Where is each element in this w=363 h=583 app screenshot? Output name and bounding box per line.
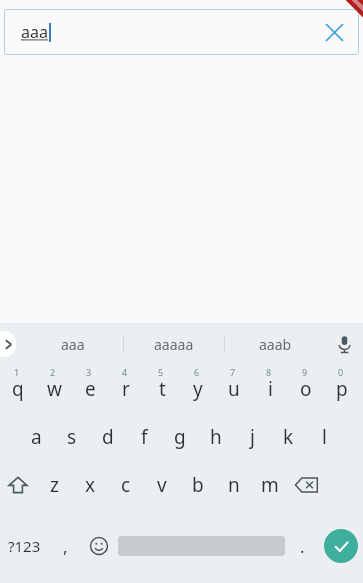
- staticText: d: [102, 424, 114, 450]
- button[interactable]: a: [18, 413, 54, 461]
- button[interactable]: q: [0, 365, 36, 413]
- staticText: y: [193, 376, 203, 402]
- staticText: e: [85, 376, 96, 402]
- staticText: w: [47, 376, 62, 402]
- staticText: aaaaa: [154, 335, 194, 354]
- button[interactable]: x: [72, 461, 108, 509]
- staticText: 1: [14, 366, 20, 378]
- staticText: c: [121, 472, 131, 498]
- button[interactable]: g: [162, 413, 198, 461]
- button[interactable]: Voice input: [325, 323, 363, 365]
- staticText: 5: [158, 366, 164, 378]
- staticText: 8: [266, 366, 272, 378]
- button[interactable]: n: [216, 461, 252, 509]
- staticText: aaa: [61, 335, 85, 354]
- button[interactable]: y: [180, 365, 216, 413]
- button[interactable]: Clear text: [317, 15, 351, 49]
- staticText: k: [283, 424, 294, 450]
- staticText: u: [228, 376, 240, 402]
- staticText: ?123: [8, 536, 41, 556]
- button[interactable]: ?123: [0, 509, 49, 583]
- staticText: a: [31, 424, 42, 450]
- button[interactable]: b: [180, 461, 216, 509]
- button[interactable]: v: [144, 461, 180, 509]
- button[interactable]: aaaaa: [124, 323, 224, 365]
- staticText: q: [12, 376, 24, 402]
- staticText: g: [174, 424, 186, 450]
- staticText: x: [85, 472, 96, 498]
- staticText: z: [50, 472, 59, 498]
- staticText: 2: [50, 366, 56, 378]
- staticText: 6: [194, 366, 200, 378]
- button[interactable]: s: [54, 413, 90, 461]
- staticText: .: [300, 535, 305, 558]
- staticText: n: [228, 472, 240, 498]
- button[interactable]: l: [306, 413, 342, 461]
- button[interactable]: Done: [318, 509, 363, 583]
- button[interactable]: e: [72, 365, 108, 413]
- button[interactable]: k: [270, 413, 306, 461]
- staticText: ,: [63, 535, 68, 558]
- staticText: t: [159, 376, 166, 402]
- staticText: l: [322, 424, 327, 450]
- button[interactable]: c: [108, 461, 144, 509]
- button[interactable]: More suggestions: [0, 323, 22, 365]
- button[interactable]: Backspace: [288, 461, 324, 509]
- button[interactable]: m: [252, 461, 288, 509]
- staticText: 9: [302, 366, 308, 378]
- staticText: f: [141, 424, 148, 450]
- button[interactable]: u: [216, 365, 252, 413]
- staticText: v: [157, 472, 167, 498]
- button[interactable]: j: [234, 413, 270, 461]
- button[interactable]: Emoji: [82, 509, 115, 583]
- button[interactable]: r: [108, 365, 144, 413]
- button[interactable]: .: [287, 509, 318, 583]
- staticText: o: [300, 376, 312, 402]
- button[interactable]: t: [144, 365, 180, 413]
- button[interactable]: [115, 509, 287, 583]
- staticText: s: [67, 424, 77, 450]
- button[interactable]: aaa: [22, 323, 123, 365]
- staticText: aaab: [259, 335, 292, 354]
- button[interactable]: i: [252, 365, 288, 413]
- staticText: i: [268, 376, 273, 402]
- staticText: b: [192, 472, 204, 498]
- staticText: aaa: [21, 21, 48, 43]
- staticText: h: [210, 424, 222, 450]
- button[interactable]: aaab: [225, 323, 325, 365]
- staticText: 0: [338, 366, 344, 378]
- button[interactable]: o: [288, 365, 324, 413]
- staticText: m: [261, 472, 279, 498]
- staticText: 3: [86, 366, 92, 378]
- staticText: 4: [122, 366, 128, 378]
- staticText: j: [250, 424, 255, 450]
- button[interactable]: d: [90, 413, 126, 461]
- button[interactable]: Shift: [0, 461, 36, 509]
- button[interactable]: p: [324, 365, 360, 413]
- staticText: 7: [230, 366, 236, 378]
- button[interactable]: h: [198, 413, 234, 461]
- button[interactable]: w: [36, 365, 72, 413]
- staticText: p: [336, 376, 348, 402]
- button[interactable]: ,: [49, 509, 82, 583]
- staticText: r: [122, 376, 130, 402]
- button[interactable]: f: [126, 413, 162, 461]
- button[interactable]: z: [36, 461, 72, 509]
- button[interactable]: aaa: [4, 9, 359, 55]
